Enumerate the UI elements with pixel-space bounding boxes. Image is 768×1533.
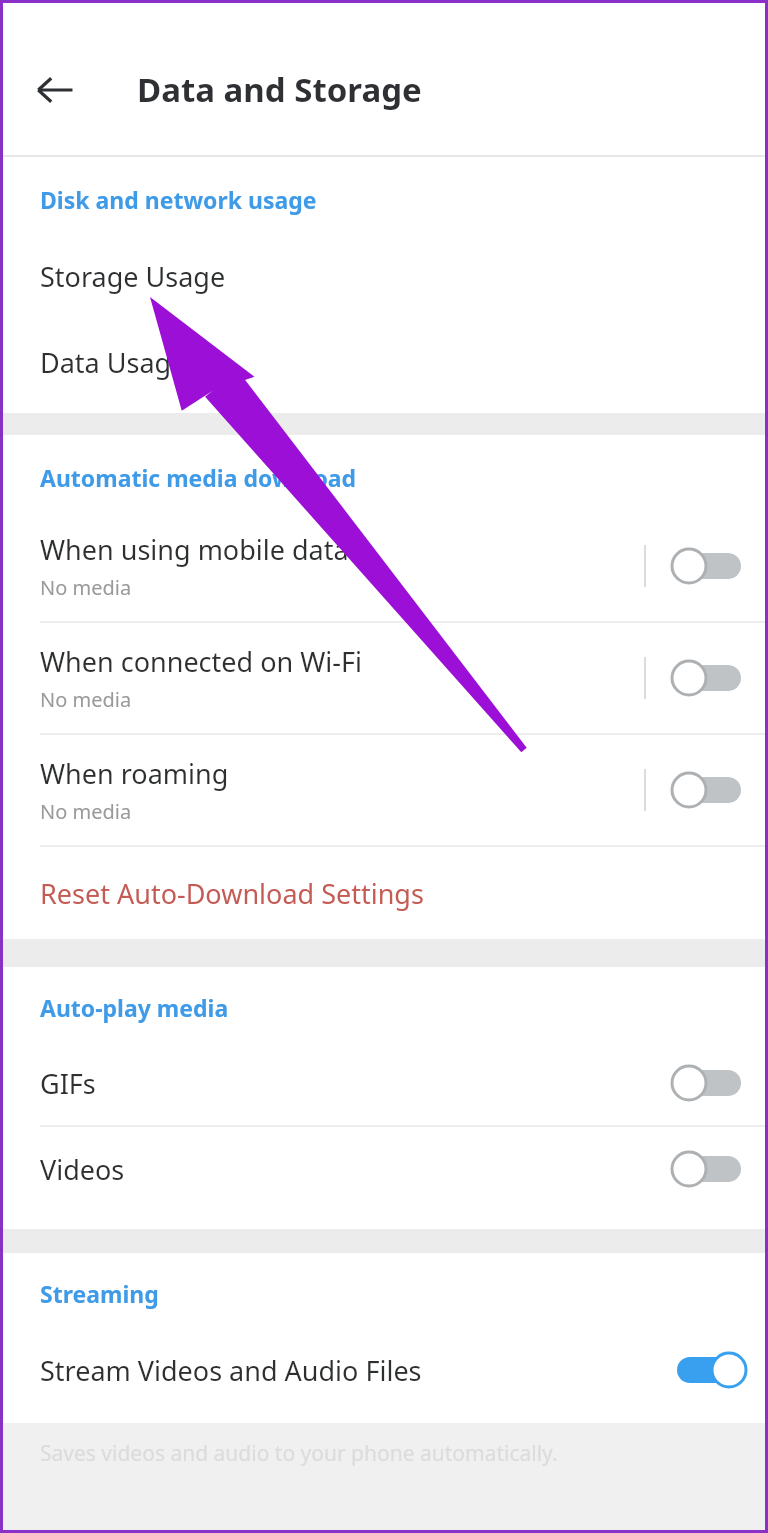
staticText: Stream Videos and Audio Files	[40, 1352, 422, 1389]
button[interactable]: GIFs	[0, 1041, 768, 1125]
staticText: Data Usage	[40, 344, 187, 381]
staticText: No media	[40, 798, 132, 825]
staticText: Data and Storage	[137, 67, 422, 112]
staticText: Automatic media download	[40, 462, 357, 493]
button[interactable]: Back	[22, 57, 88, 123]
staticText: When roaming	[40, 755, 229, 792]
staticText: GIFs	[40, 1065, 96, 1102]
button[interactable]: When roaming	[0, 735, 768, 845]
button[interactable]: GIFs	[666, 1057, 768, 1109]
staticText: Disk and network usage	[40, 184, 317, 215]
staticText: Storage Usage	[40, 258, 226, 295]
staticText: Videos	[40, 1151, 125, 1188]
button[interactable]: Videos	[0, 1127, 768, 1211]
staticText: No media	[40, 574, 132, 601]
staticText: Reset Auto-Download Settings	[40, 875, 424, 912]
staticText: Saves videos and audio to your phone aut…	[40, 1439, 558, 1468]
button[interactable]: Data Usage	[0, 319, 768, 405]
button[interactable]: When using mobile data	[666, 540, 768, 592]
button[interactable]: Storage Usage	[0, 233, 768, 319]
staticText: No media	[40, 686, 132, 713]
staticText: When using mobile data	[40, 531, 349, 568]
button[interactable]: When connected on Wi-Fi	[0, 623, 768, 733]
staticText: Streaming	[40, 1278, 159, 1309]
staticText: Auto-play media	[40, 992, 229, 1023]
button[interactable]: Videos	[666, 1143, 768, 1195]
button[interactable]: When roaming	[666, 764, 768, 816]
button[interactable]: Stream Videos and Audio Files	[0, 1327, 768, 1413]
button[interactable]: When using mobile data	[0, 511, 768, 621]
button[interactable]: Stream Videos and Audio Files	[666, 1344, 768, 1396]
button[interactable]: Reset Auto-Download Settings	[0, 847, 768, 939]
staticText: When connected on Wi-Fi	[40, 643, 362, 680]
button[interactable]: When connected on Wi-Fi	[666, 652, 768, 704]
